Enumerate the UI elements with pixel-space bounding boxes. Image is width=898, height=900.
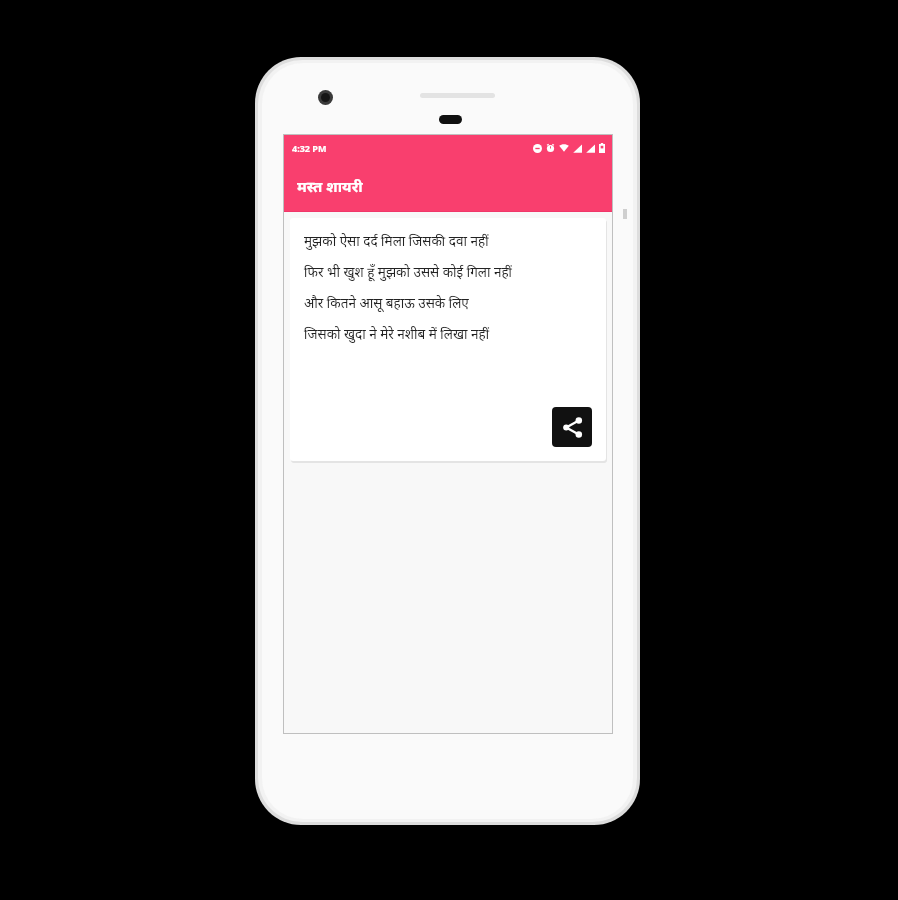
staticText: फिर भी खुश हूँ मुझको उससे कोई गिला नहीं <box>304 263 592 281</box>
button[interactable]: Share <box>552 407 592 447</box>
staticText: मस्त शायरी <box>297 176 363 196</box>
staticText: मुझको ऐसा दर्द मिला जिसकी दवा नहीं <box>304 232 592 250</box>
staticText: 4:32 PM <box>292 142 327 154</box>
staticText: और कितने आसू बहाऊ उसके लिए <box>304 294 592 312</box>
button[interactable]: मुझको ऐसा दर्द मिला जिसकी दवा नहीं <box>290 218 606 461</box>
staticText: जिसको खुदा ने मेरे नशीब में लिखा नहीं <box>304 325 592 343</box>
